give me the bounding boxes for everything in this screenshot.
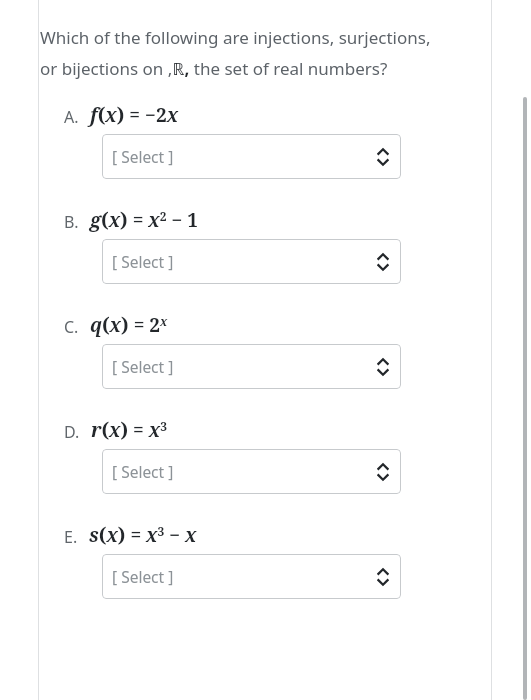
staticText: [ Select ] [112, 566, 174, 587]
button[interactable]: Select an answer [102, 449, 401, 494]
staticText: [ Select ] [112, 146, 174, 167]
staticText: Which of the following are injections, s… [40, 26, 440, 80]
staticText: q(x) = 2x [90, 312, 168, 338]
staticText: [ Select ] [112, 251, 174, 272]
staticText: [ Select ] [112, 356, 174, 377]
staticText: D. [64, 421, 80, 443]
staticText: E. [64, 526, 78, 548]
staticText: C. [64, 316, 79, 338]
staticText: B. [64, 211, 79, 233]
button[interactable]: Select an answer [102, 554, 401, 599]
button[interactable]: Select an answer [102, 134, 401, 179]
staticText: s(x) = x3 − x [89, 522, 197, 548]
staticText: A. [64, 106, 79, 128]
button[interactable]: Select an answer [102, 344, 401, 389]
staticText: f(x) = −2x [90, 102, 179, 128]
staticText: g(x) = x2 − 1 [90, 207, 199, 233]
staticText: [ Select ] [112, 461, 174, 482]
button[interactable]: Select an answer [102, 239, 401, 284]
staticText: r(x) = x3 [91, 417, 168, 443]
